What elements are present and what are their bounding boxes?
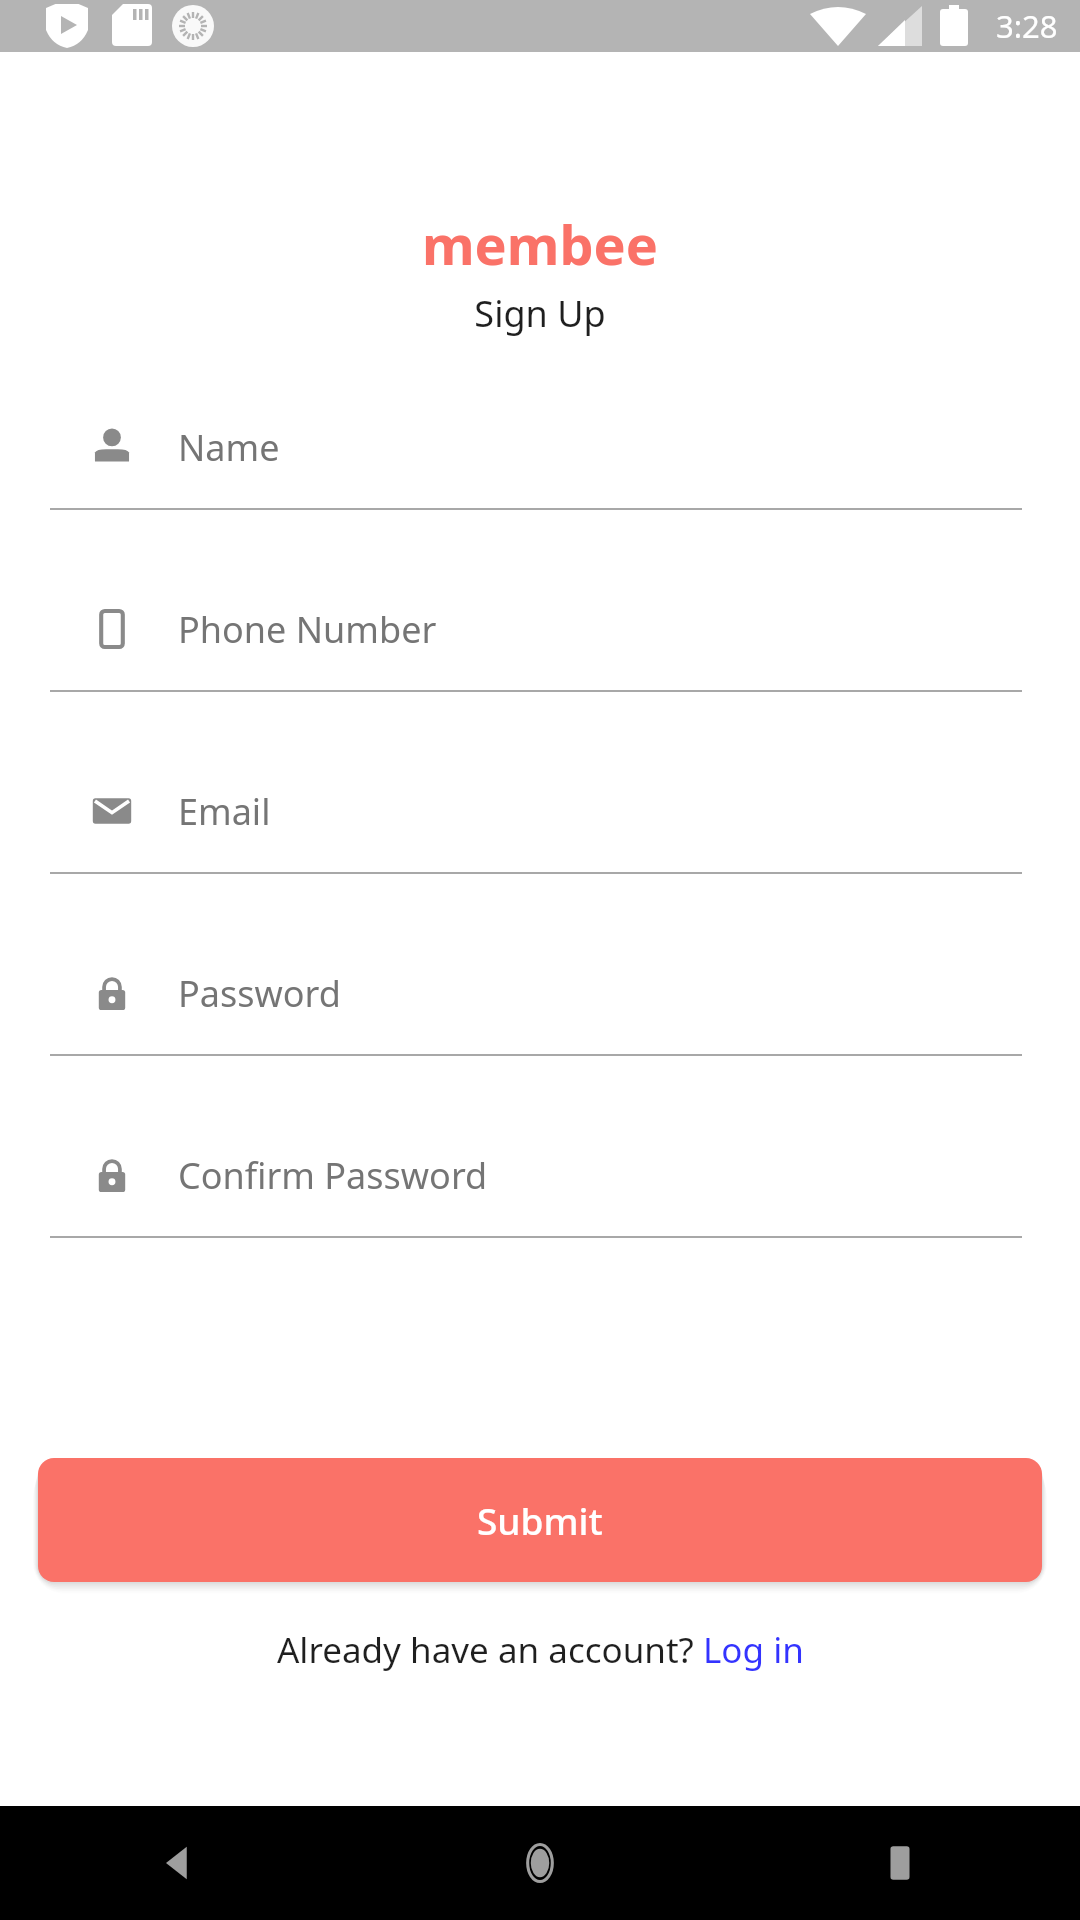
staticText: Sign Up <box>0 289 1080 338</box>
staticText: Password <box>178 969 341 1018</box>
button[interactable]: Confirm Password <box>0 1114 1080 1296</box>
staticText: Confirm Password <box>178 1151 488 1200</box>
staticText: 3:28 <box>996 5 1058 47</box>
button[interactable]: Submit <box>38 1458 1042 1582</box>
button[interactable]: Password <box>0 932 1080 1114</box>
button[interactable]: Home <box>360 1806 720 1920</box>
staticText: Submit <box>477 1495 603 1545</box>
staticText: membee <box>0 207 1080 281</box>
staticText: Phone Number <box>178 605 437 654</box>
button[interactable]: Log in <box>703 1626 804 1674</box>
staticText: Name <box>178 423 280 472</box>
button[interactable]: Name <box>0 386 1080 568</box>
staticText: Already have an account? <box>277 1626 703 1674</box>
button[interactable]: Phone Number <box>0 568 1080 750</box>
button[interactable]: Recent apps <box>720 1806 1080 1920</box>
button[interactable]: Email <box>0 750 1080 932</box>
staticText: Email <box>178 787 271 836</box>
staticText: Log in <box>703 1626 804 1674</box>
button[interactable]: Back <box>0 1806 360 1920</box>
